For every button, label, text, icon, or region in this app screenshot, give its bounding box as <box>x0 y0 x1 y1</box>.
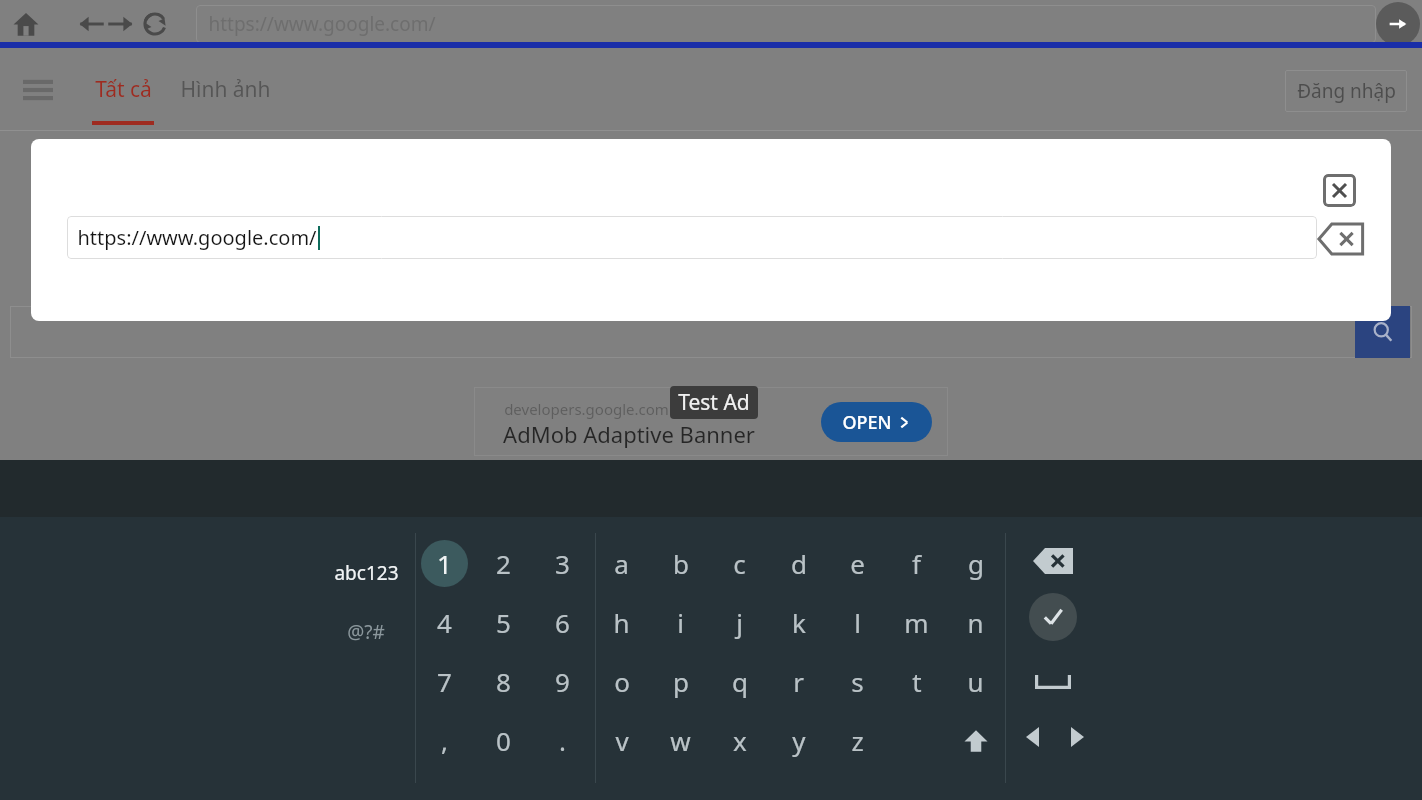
button[interactable]: q <box>710 652 769 711</box>
staticText: k <box>792 605 806 640</box>
button[interactable]: c <box>710 534 769 593</box>
button[interactable]: 9 <box>533 652 592 711</box>
staticText: n <box>967 605 984 640</box>
button[interactable]: Home <box>6 4 46 44</box>
staticText: r <box>793 664 804 699</box>
staticText: p <box>673 664 689 699</box>
button[interactable]: l <box>828 593 887 652</box>
staticText: s <box>851 664 864 699</box>
button[interactable]: 4 <box>415 593 474 652</box>
staticText: AdMob Adaptive Banner <box>503 419 755 449</box>
button[interactable]: g <box>946 534 1005 593</box>
button[interactable]: . <box>533 711 592 770</box>
button[interactable]: Backspace <box>1318 222 1364 256</box>
staticText: m <box>904 605 929 640</box>
button[interactable]: u <box>946 652 1005 711</box>
button[interactable]: 7 <box>415 652 474 711</box>
button[interactable]: o <box>592 652 651 711</box>
button[interactable]: w <box>651 711 710 770</box>
button[interactable]: Close <box>1323 174 1356 207</box>
staticText: Test Ad <box>678 388 750 417</box>
button[interactable]: Back <box>72 4 112 44</box>
staticText: e <box>850 546 865 581</box>
button[interactable]: n <box>946 593 1005 652</box>
staticText: a <box>614 546 629 581</box>
button[interactable]: p <box>651 652 710 711</box>
staticText: 6 <box>555 605 570 640</box>
staticText: h <box>613 605 630 640</box>
button[interactable] <box>10 306 1412 358</box>
button[interactable]: Menu <box>18 70 58 110</box>
button[interactable]: OPEN <box>821 402 932 442</box>
button[interactable]: Space <box>1023 657 1083 707</box>
staticText: j <box>736 605 743 640</box>
staticText: Hình ảnh <box>180 75 271 104</box>
button[interactable]: v <box>592 711 651 770</box>
staticText: 7 <box>437 664 452 699</box>
button[interactable]: abc123 <box>300 544 432 602</box>
button[interactable]: 1 <box>421 540 468 587</box>
staticText: d <box>791 546 807 581</box>
button[interactable]: Move right <box>1055 715 1099 759</box>
staticText: Đăng nhập <box>1297 78 1396 104</box>
staticText: z <box>851 723 864 758</box>
button[interactable]: e <box>828 534 887 593</box>
button[interactable]: s <box>828 652 887 711</box>
button[interactable]: f <box>887 534 946 593</box>
button[interactable]: Search <box>1355 306 1410 358</box>
button[interactable]: 6 <box>533 593 592 652</box>
button[interactable]: k <box>769 593 828 652</box>
button[interactable]: Shift <box>946 711 1005 770</box>
staticText: i <box>677 605 684 640</box>
button[interactable]: y <box>769 711 828 770</box>
staticText: o <box>614 664 630 699</box>
button[interactable]: j <box>710 593 769 652</box>
button[interactable]: Forward <box>100 4 140 44</box>
button[interactable]: Reload <box>135 4 175 44</box>
staticText: y <box>792 723 806 758</box>
button[interactable]: Move left <box>1010 715 1054 759</box>
button[interactable]: 2 <box>474 534 533 593</box>
button[interactable]: m <box>887 593 946 652</box>
button[interactable]: 5 <box>474 593 533 652</box>
button[interactable]: a <box>592 534 651 593</box>
staticText: , <box>441 723 448 758</box>
button[interactable]: d <box>769 534 828 593</box>
button[interactable]: x <box>710 711 769 770</box>
button[interactable]: , <box>415 711 474 770</box>
button[interactable]: Hình ảnh <box>178 48 272 131</box>
staticText: abc123 <box>334 560 399 586</box>
staticText: https://www.google.com/ <box>208 11 436 37</box>
button[interactable]: 3 <box>533 534 592 593</box>
staticText: developers.google.com <box>504 399 669 419</box>
staticText: 3 <box>555 546 570 581</box>
staticText: q <box>732 664 748 699</box>
button[interactable]: t <box>887 652 946 711</box>
button[interactable]: z <box>828 711 887 770</box>
staticText: 0 <box>496 723 511 758</box>
staticText: l <box>854 605 861 640</box>
staticText: w <box>670 723 691 758</box>
staticText: 2 <box>496 546 511 581</box>
button[interactable]: 0 <box>474 711 533 770</box>
button[interactable]: Delete <box>1023 535 1083 587</box>
button[interactable]: @?# <box>300 603 432 661</box>
button[interactable]: 8 <box>474 652 533 711</box>
button[interactable]: Enter <box>1029 593 1077 641</box>
button[interactable]: h <box>592 593 651 652</box>
button[interactable]: i <box>651 593 710 652</box>
button[interactable]: developers.google.com <box>474 387 948 456</box>
staticText: Tất cả <box>95 75 152 104</box>
button[interactable]: https://www.google.com/ <box>196 5 1376 43</box>
staticText: . <box>559 723 566 758</box>
staticText: g <box>968 546 984 581</box>
button[interactable]: Tất cả <box>88 48 158 131</box>
staticText: x <box>733 723 747 758</box>
staticText: 4 <box>437 605 452 640</box>
staticText: 8 <box>496 664 511 699</box>
button[interactable]: Go <box>1376 2 1420 46</box>
button[interactable]: r <box>769 652 828 711</box>
button[interactable]: Đăng nhập <box>1285 70 1407 112</box>
button[interactable]: https://www.google.com/ <box>67 216 1317 259</box>
button[interactable]: b <box>651 534 710 593</box>
